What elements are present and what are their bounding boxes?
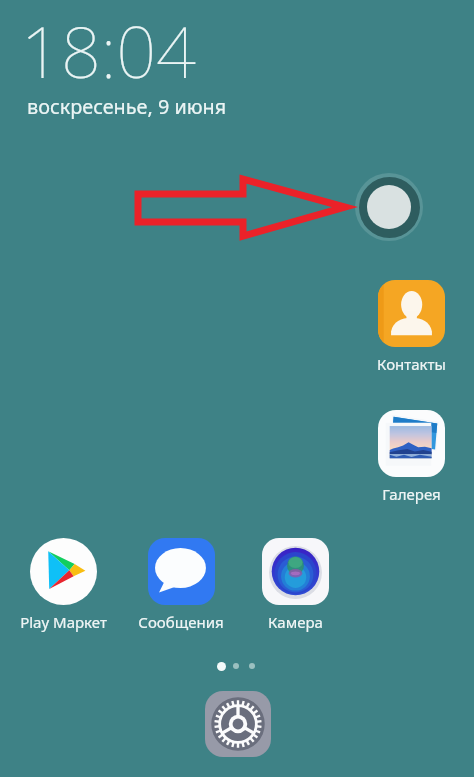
staticText: Галерея [382,484,441,504]
staticText: Камера [268,612,323,632]
button[interactable]: Контакты [363,280,459,374]
staticText: Контакты [377,354,446,374]
button[interactable]: Сообщения [133,538,229,632]
button[interactable]: Камера [247,538,343,632]
button[interactable]: 18:04 [21,0,251,125]
button[interactable]: Настройки [205,691,271,757]
staticText: 18:04 [21,3,196,98]
staticText: Сообщения [138,612,224,632]
button[interactable]: Галерея [363,410,459,504]
staticText: воскресенье, 9 июня [27,93,227,120]
button[interactable]: Assistive button [355,173,423,241]
staticText: Play Маркет [20,612,107,632]
button[interactable]: Play Маркет [15,538,111,632]
